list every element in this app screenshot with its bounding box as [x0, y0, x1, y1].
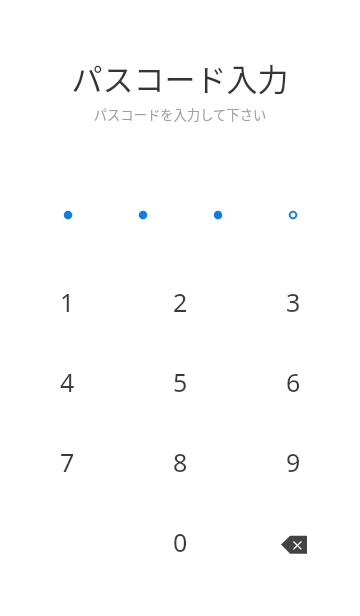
- staticText: パスコードを入力して下さい: [0, 105, 360, 124]
- staticText: 3: [286, 285, 301, 319]
- staticText: 7: [60, 445, 75, 479]
- button[interactable]: 9: [237, 422, 350, 502]
- button[interactable]: 0: [124, 502, 237, 582]
- button[interactable]: 5: [124, 342, 237, 422]
- button[interactable]: 2: [124, 262, 237, 342]
- staticText: 5: [173, 365, 188, 399]
- button[interactable]: 3: [237, 262, 350, 342]
- button[interactable]: 8: [124, 422, 237, 502]
- staticText: パスコード入力: [0, 55, 360, 100]
- staticText: 1: [60, 285, 75, 319]
- staticText: 2: [173, 285, 188, 319]
- button[interactable]: 4: [10, 342, 124, 422]
- staticText: 8: [173, 445, 188, 479]
- button[interactable]: 6: [237, 342, 350, 422]
- button[interactable]: 1: [10, 262, 124, 342]
- button[interactable]: Backspace: [237, 502, 350, 582]
- staticText: 6: [286, 365, 301, 399]
- staticText: 4: [60, 365, 75, 399]
- staticText: 0: [173, 525, 188, 559]
- button[interactable]: 7: [10, 422, 124, 502]
- staticText: 9: [286, 445, 301, 479]
